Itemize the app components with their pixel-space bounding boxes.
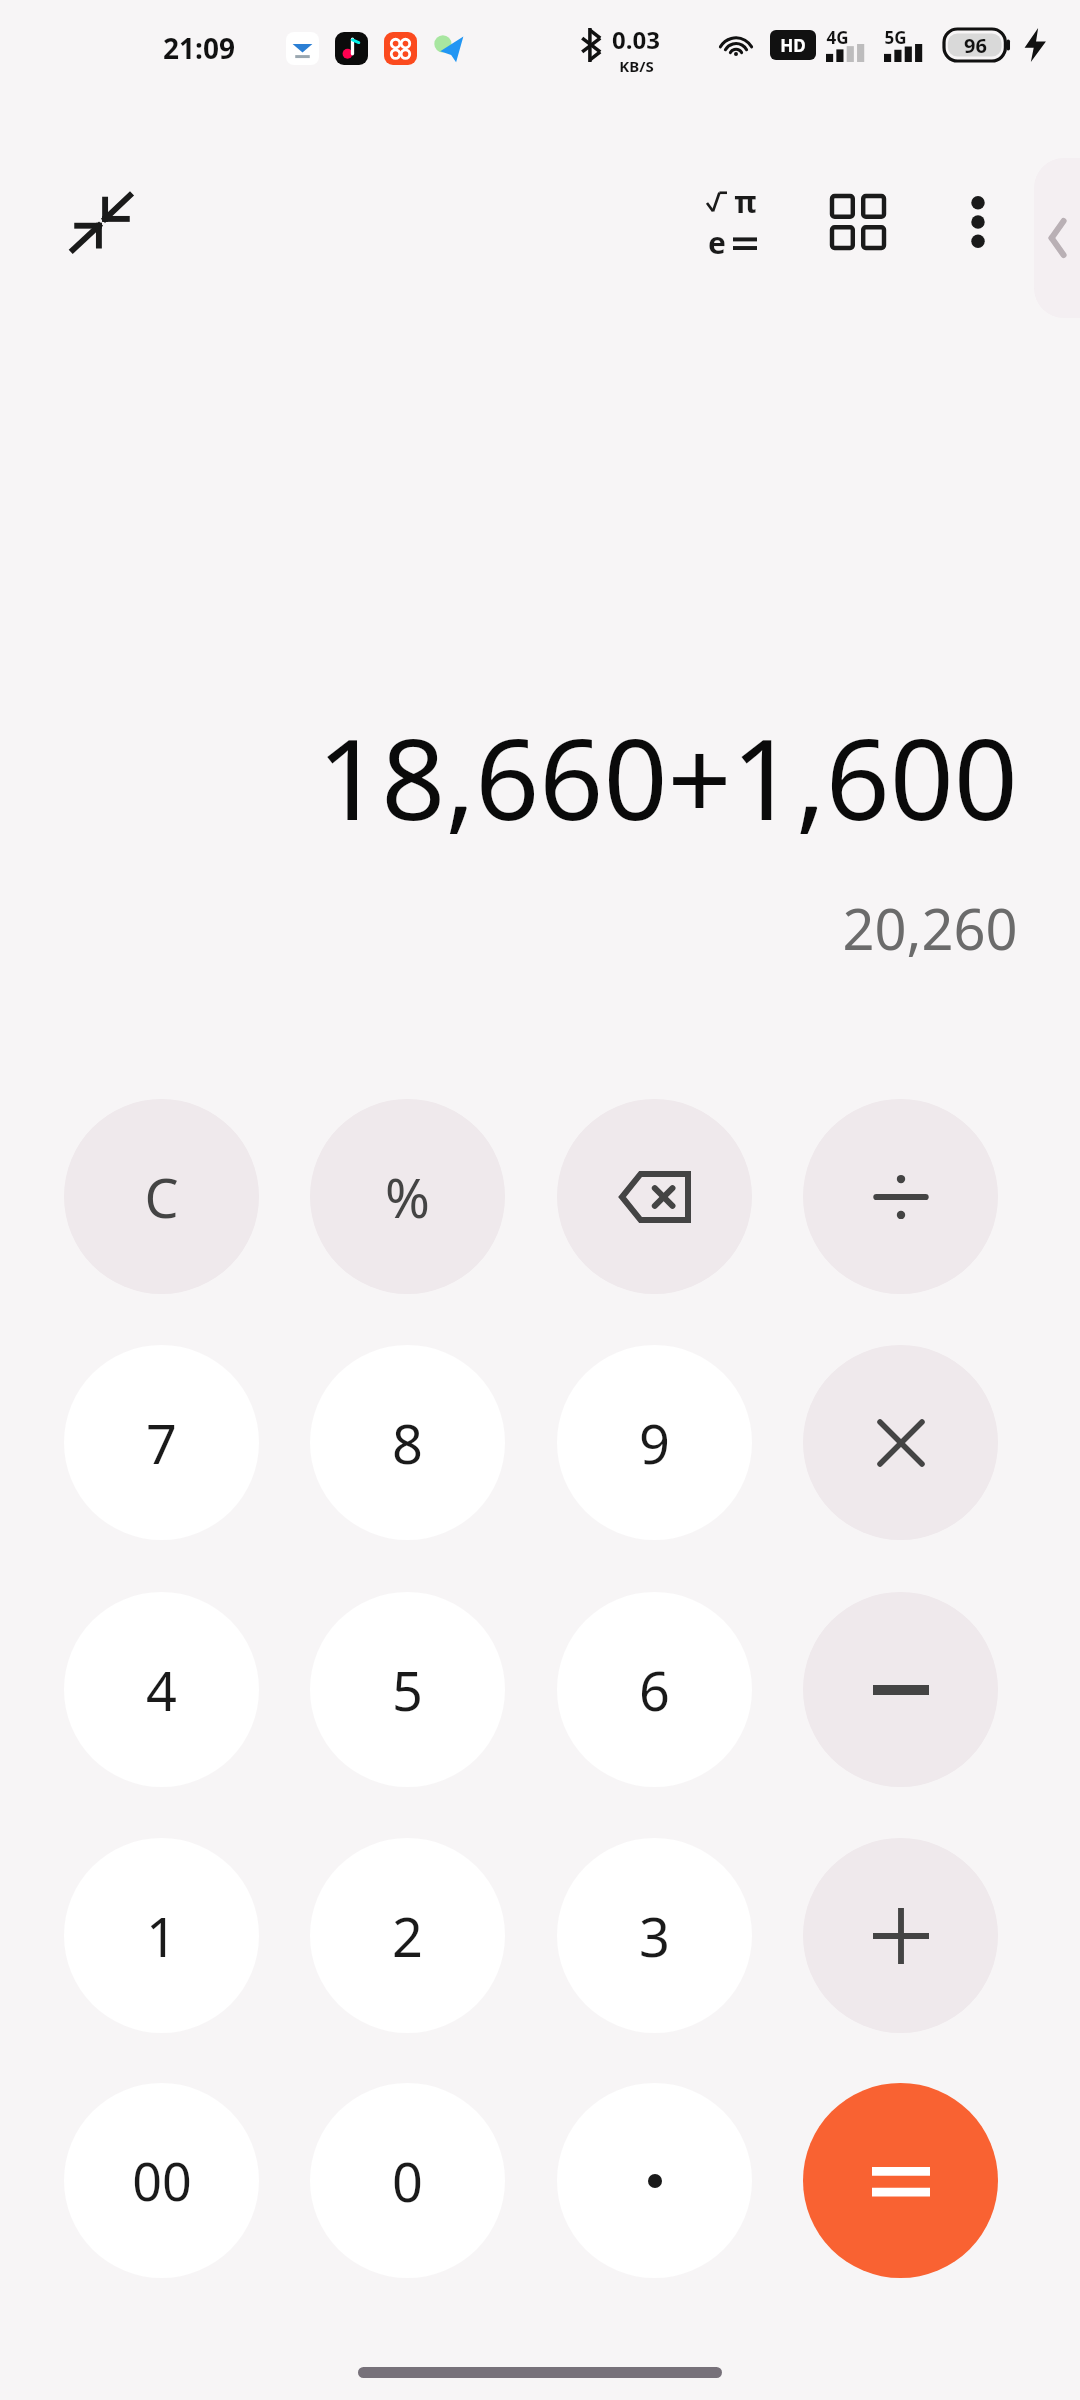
button[interactable]: History — [808, 172, 908, 272]
button[interactable]: 6 — [557, 1592, 752, 1787]
button[interactable]: 2 — [310, 1838, 505, 2033]
staticText: 5G — [884, 26, 907, 49]
staticText: 00 — [132, 2145, 192, 2216]
button[interactable] — [803, 1099, 998, 1294]
button[interactable]: More options — [928, 172, 1028, 272]
button[interactable]: 0 — [310, 2083, 505, 2278]
staticText: 2 — [392, 1899, 423, 1973]
button[interactable]: 00 — [64, 2083, 259, 2278]
button[interactable] — [803, 1592, 998, 1787]
staticText: C — [144, 1160, 179, 1234]
staticText: 18,660+1,600 — [317, 700, 1018, 853]
staticText: 21:09 — [163, 29, 235, 67]
staticText: 9 — [639, 1406, 670, 1480]
staticText: 20,260 — [842, 890, 1018, 966]
button[interactable]: 3 — [557, 1838, 752, 2033]
staticText: 5 — [392, 1653, 423, 1727]
staticText: 1 — [146, 1899, 177, 1973]
button[interactable]: Backspace — [557, 1099, 752, 1294]
button[interactable]: 7 — [64, 1345, 259, 1540]
button[interactable] — [803, 1345, 998, 1540]
staticText: 4 — [146, 1653, 177, 1727]
staticText: e — [708, 222, 726, 263]
staticText: π — [734, 181, 757, 222]
staticText: 3 — [639, 1899, 670, 1973]
button[interactable]: 4 — [64, 1592, 259, 1787]
button[interactable]: % — [310, 1099, 505, 1294]
staticText: KB/S — [619, 56, 654, 76]
button[interactable]: 9 — [557, 1345, 752, 1540]
staticText: 96 — [964, 32, 987, 59]
staticText: 7 — [146, 1406, 177, 1480]
staticText: HD — [780, 34, 806, 57]
staticText: 4G — [826, 26, 849, 49]
button[interactable]: 8 — [310, 1345, 505, 1540]
button[interactable]: 5 — [310, 1592, 505, 1787]
button[interactable] — [803, 1838, 998, 2033]
button[interactable]: Scientific — [682, 172, 782, 272]
staticText: 8 — [392, 1406, 423, 1480]
button[interactable] — [803, 2083, 998, 2278]
staticText: 6 — [639, 1653, 670, 1727]
staticText: 0.03 — [612, 23, 660, 56]
button[interactable]: Collapse — [52, 172, 152, 272]
button[interactable] — [557, 2083, 752, 2278]
staticText: 0 — [392, 2144, 423, 2218]
button[interactable]: 1 — [64, 1838, 259, 2033]
staticText: % — [385, 1160, 430, 1234]
button[interactable]: Open panel — [1034, 158, 1080, 318]
button[interactable]: C — [64, 1099, 259, 1294]
